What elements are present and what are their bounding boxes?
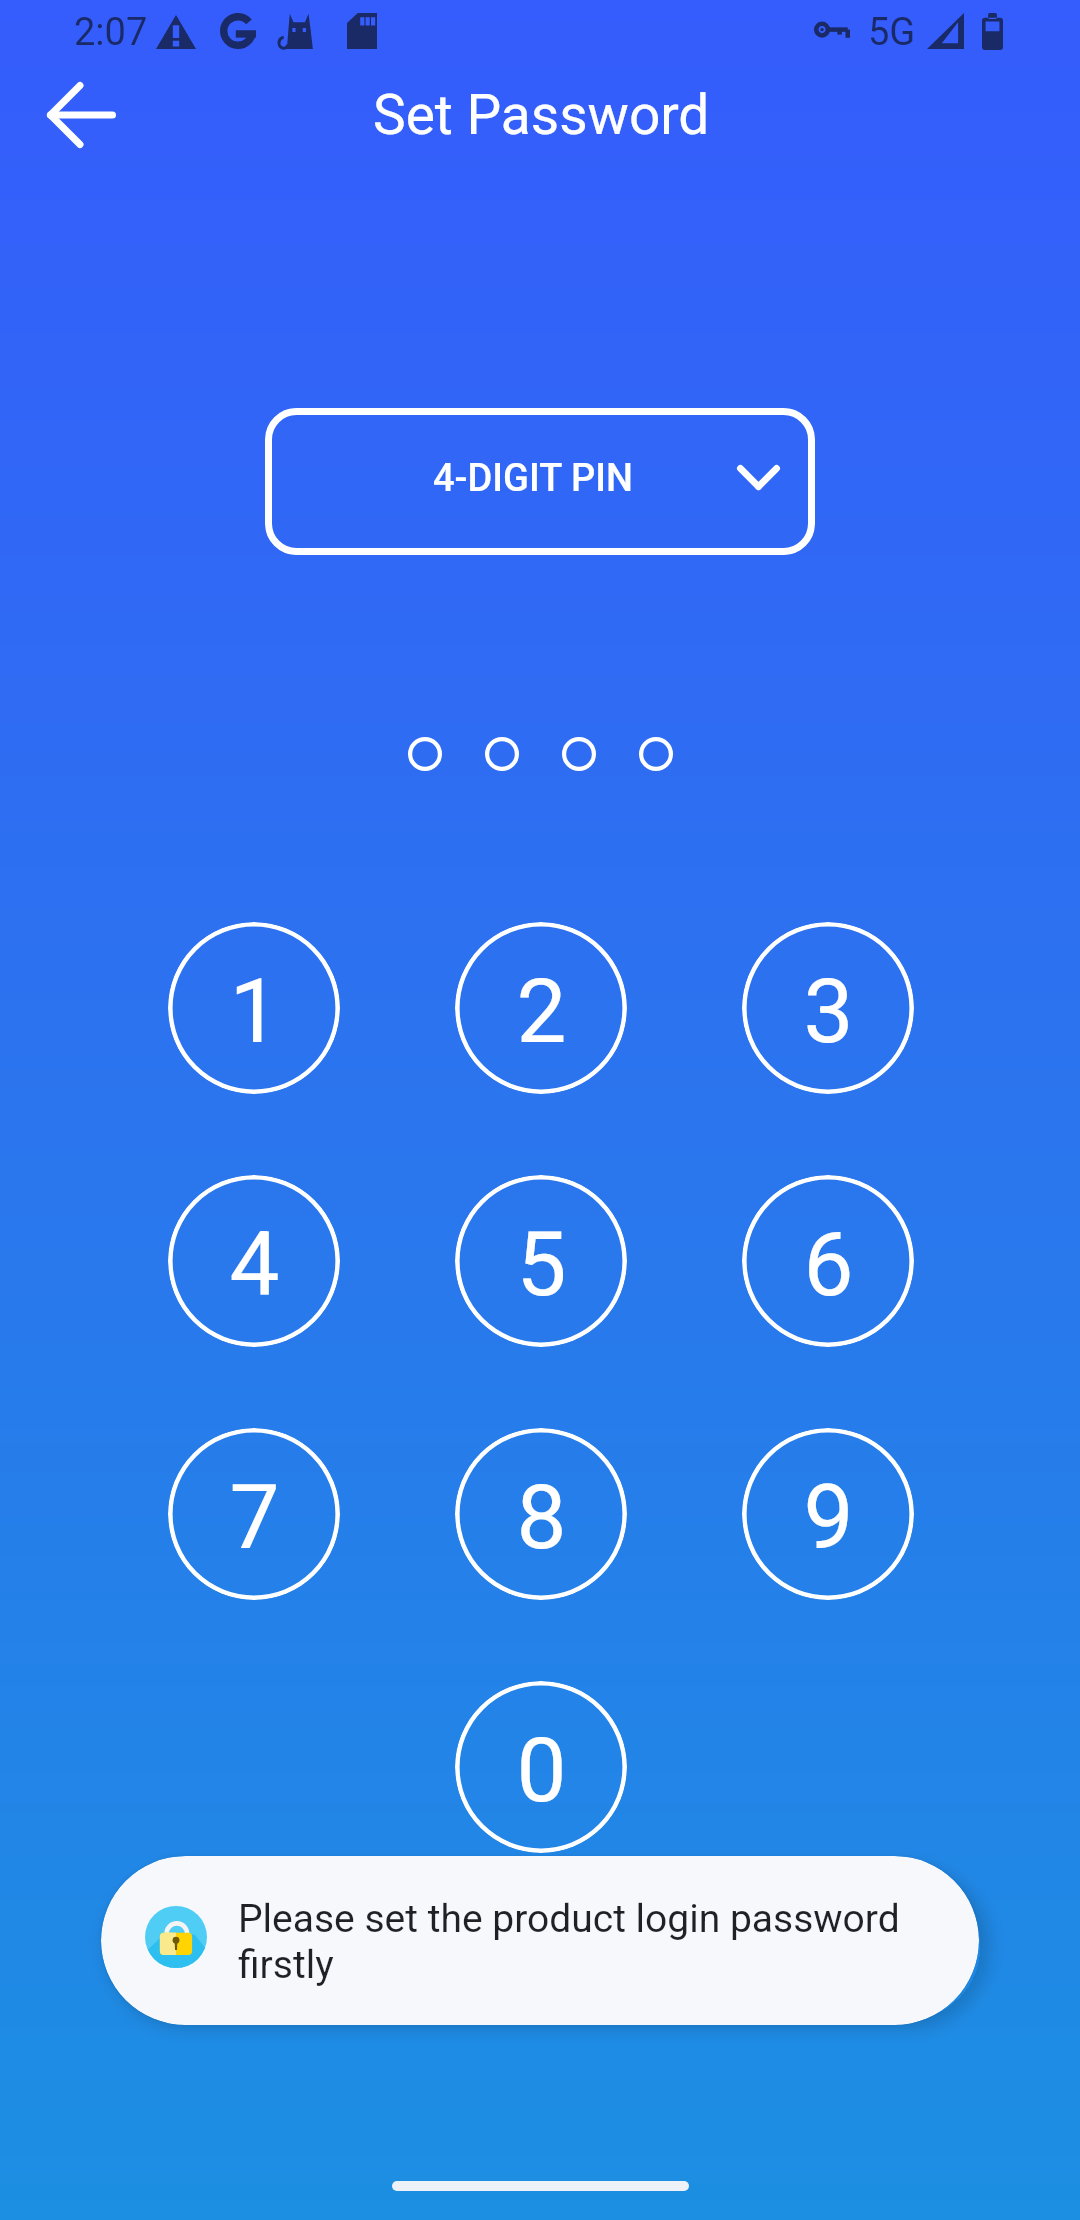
button[interactable]: 3	[742, 922, 914, 1094]
button[interactable]: 4	[168, 1175, 340, 1347]
button[interactable]: 1	[168, 922, 340, 1094]
button[interactable]: 9	[742, 1428, 914, 1600]
staticText: 7	[229, 1465, 280, 1569]
button[interactable]: 7	[168, 1428, 340, 1600]
button[interactable]: 6	[742, 1175, 914, 1347]
staticText: 2:07	[74, 10, 148, 55]
button[interactable]: 4-DIGIT PIN	[265, 408, 815, 555]
button[interactable]: Back	[27, 61, 135, 169]
button[interactable]: 0	[455, 1681, 627, 1853]
staticText: Please set the product login password fi…	[238, 1896, 938, 1988]
staticText: 9	[803, 1465, 854, 1569]
staticText: Set Password	[373, 83, 710, 147]
staticText: 2	[516, 959, 567, 1063]
staticText: 4-DIGIT PIN	[433, 456, 633, 501]
button[interactable]: 5	[455, 1175, 627, 1347]
staticText: 5G	[868, 10, 916, 55]
staticText: 1	[229, 959, 280, 1063]
staticText: 5	[516, 1212, 567, 1316]
button[interactable]: 2	[455, 922, 627, 1094]
staticText: 6	[803, 1212, 854, 1316]
staticText: 0	[516, 1718, 567, 1822]
button[interactable]: 8	[455, 1428, 627, 1600]
staticText: 3	[803, 959, 854, 1063]
staticText: 4	[229, 1212, 280, 1316]
staticText: 8	[516, 1465, 567, 1569]
